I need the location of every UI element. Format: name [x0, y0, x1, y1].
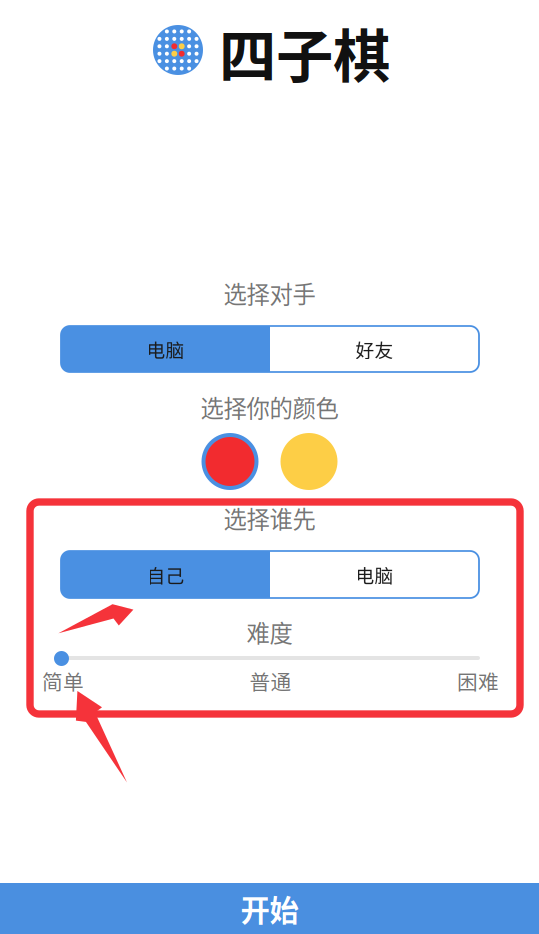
staticText: 简单: [42, 666, 84, 696]
staticText: 电脑: [146, 335, 184, 362]
button[interactable]: 开始: [0, 883, 539, 934]
staticText: 普通: [249, 666, 291, 696]
staticText: 四子棋: [219, 10, 390, 93]
staticText: 选择你的颜色: [200, 390, 338, 424]
button[interactable]: 好友: [270, 326, 479, 372]
staticText: 开始: [240, 887, 298, 930]
staticText: 困难: [457, 666, 499, 696]
staticText: 选择谁先: [223, 501, 315, 535]
button[interactable]: 黄色棋子: [280, 433, 337, 490]
button[interactable]: 自己: [61, 551, 270, 598]
button[interactable]: 电脑: [61, 326, 270, 372]
staticText: 电脑: [355, 561, 393, 588]
staticText: 难度: [246, 615, 292, 649]
staticText: 好友: [355, 335, 393, 362]
staticText: 选择对手: [223, 276, 315, 310]
staticText: 自己: [146, 561, 184, 588]
button[interactable]: 红色棋子: [201, 433, 258, 490]
button[interactable]: 电脑: [270, 551, 479, 598]
